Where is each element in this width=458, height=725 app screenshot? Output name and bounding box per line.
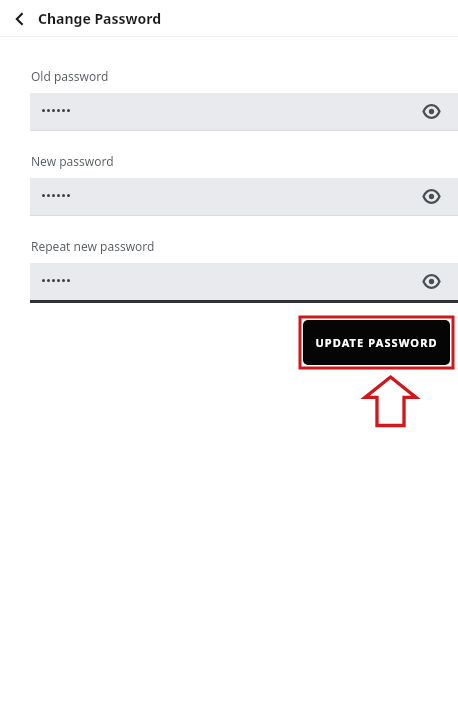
button[interactable]: Back bbox=[6, 5, 34, 33]
button[interactable]: Show password bbox=[413, 263, 450, 300]
staticText: Old password bbox=[31, 68, 109, 84]
button[interactable]: Show password bbox=[413, 93, 450, 130]
staticText: UPDATE PASSWORD bbox=[315, 335, 438, 350]
staticText: Repeat new password bbox=[31, 238, 155, 254]
button[interactable]: Show password bbox=[413, 178, 450, 215]
staticText: Change Password bbox=[38, 9, 162, 28]
staticText: New password bbox=[31, 153, 114, 169]
button[interactable]: Show password bbox=[30, 93, 458, 133]
button[interactable]: UPDATE PASSWORD bbox=[303, 320, 450, 365]
button[interactable]: Show password bbox=[30, 263, 458, 304]
button[interactable]: Show password bbox=[30, 178, 458, 218]
